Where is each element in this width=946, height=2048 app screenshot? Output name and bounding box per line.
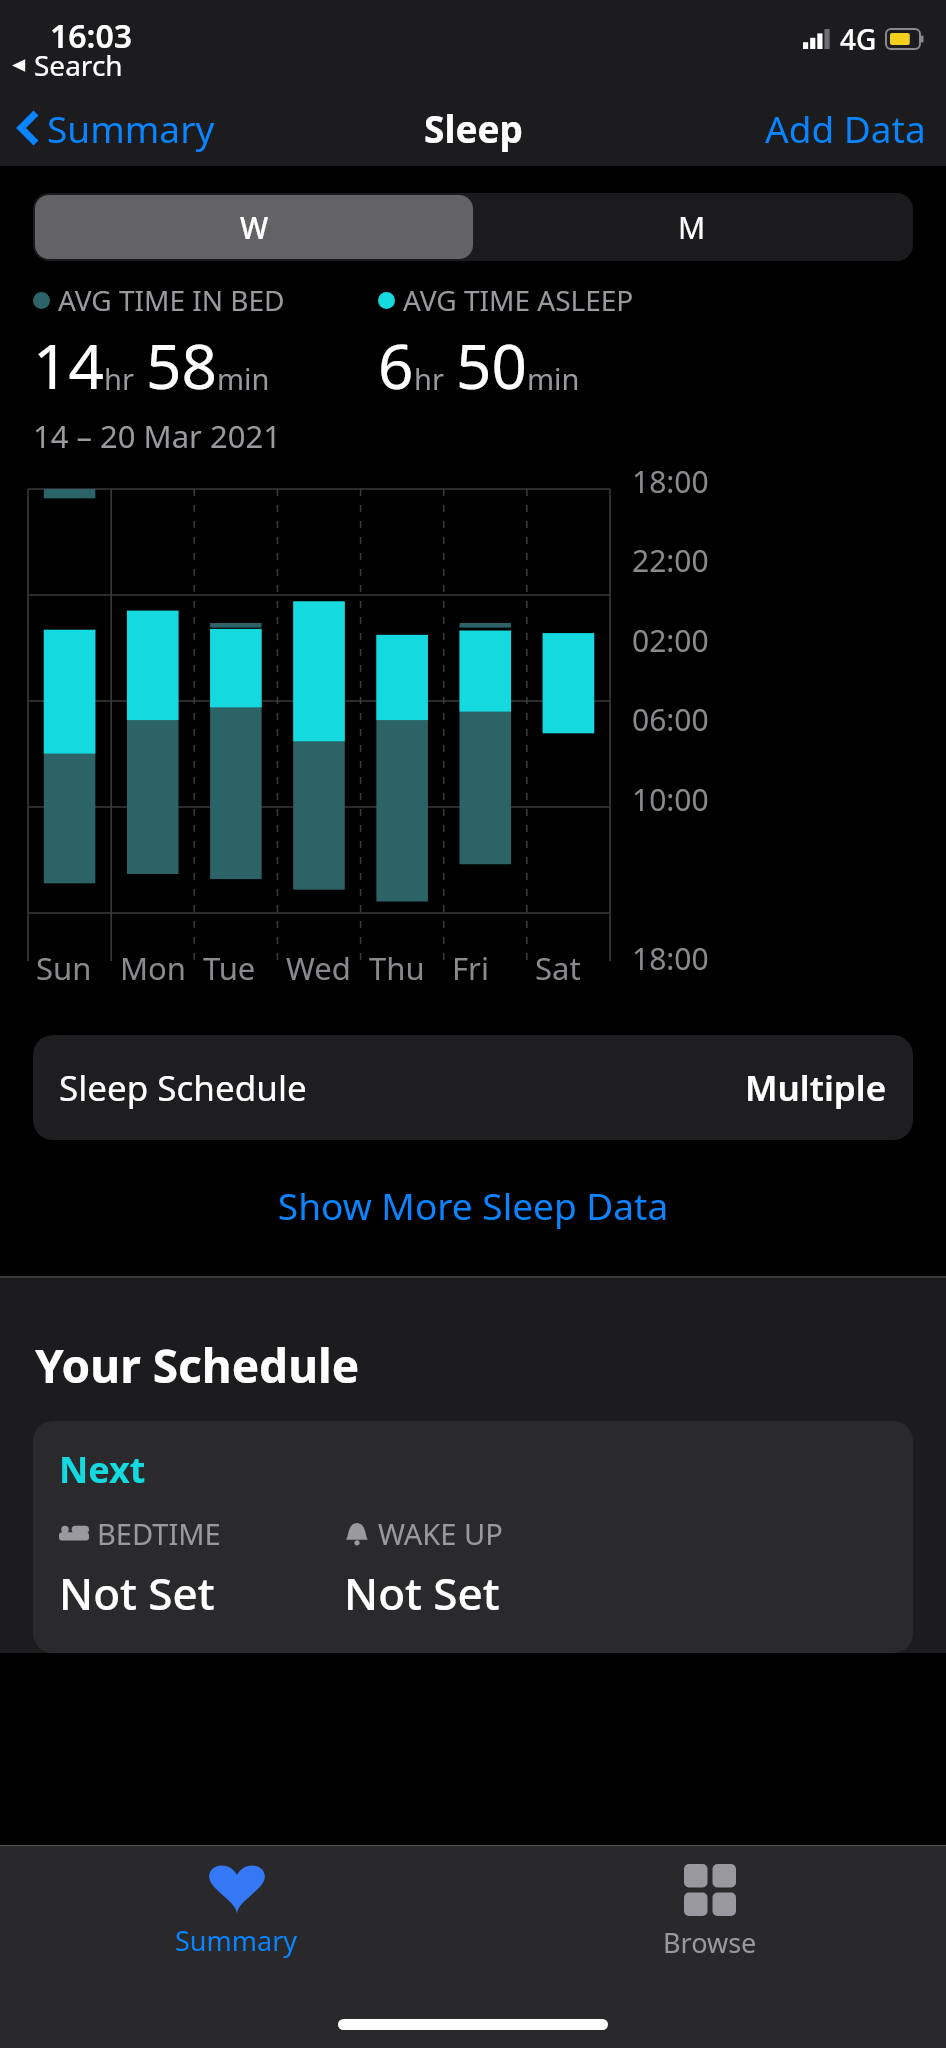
staticText: Tue	[203, 947, 256, 989]
button[interactable]: Next	[33, 1421, 913, 1653]
staticText: Fri	[452, 947, 489, 989]
staticText: hr	[414, 359, 444, 398]
button[interactable]: Summary	[10, 95, 223, 161]
button[interactable]: Add Data	[745, 93, 946, 163]
staticText: min	[527, 359, 580, 398]
staticText: 6	[378, 323, 414, 407]
button[interactable]: Sleep Schedule	[33, 1035, 913, 1140]
staticText: W	[240, 207, 269, 248]
staticText: AVG TIME ASLEEP	[403, 281, 634, 319]
staticText: Thu	[369, 947, 425, 989]
button[interactable]: Summary	[0, 1846, 473, 1976]
staticText: Not Set	[344, 1563, 500, 1623]
staticText: 14 – 20 Mar 2021	[33, 415, 281, 457]
staticText: Sat	[535, 947, 581, 989]
staticText: Summary	[175, 1922, 298, 1959]
staticText: BEDTIME	[97, 1514, 221, 1553]
staticText: 06:00	[632, 699, 709, 740]
staticText: Sleep Schedule	[59, 1064, 307, 1112]
button[interactable]: Browse	[473, 1846, 946, 1976]
staticText: Browse	[663, 1924, 757, 1961]
staticText: Mon	[120, 947, 187, 989]
staticText: 02:00	[632, 620, 709, 661]
staticText: Next	[59, 1445, 146, 1494]
staticText: Not Set	[59, 1563, 215, 1623]
staticText: Your Schedule	[35, 1334, 360, 1397]
staticText: 18:00	[632, 938, 709, 979]
staticText: 10:00	[632, 779, 709, 820]
staticText: WAKE UP	[378, 1514, 503, 1553]
staticText: min	[217, 359, 270, 398]
staticText: 58	[146, 323, 217, 407]
staticText: 16:03	[50, 14, 133, 58]
staticText: 14	[33, 323, 104, 407]
button[interactable]: Show More Sleep Data	[0, 1172, 946, 1238]
staticText: 50	[456, 323, 527, 407]
staticText: Search	[34, 46, 123, 84]
staticText: Multiple	[745, 1064, 887, 1112]
staticText: 18:00	[632, 461, 709, 502]
staticText: AVG TIME IN BED	[58, 281, 285, 319]
button[interactable]: M	[473, 195, 911, 259]
staticText: Sleep	[424, 103, 523, 153]
staticText: 4G	[840, 20, 877, 58]
staticText: 22:00	[632, 540, 709, 581]
staticText: Sun	[36, 947, 92, 989]
staticText: Summary	[47, 103, 215, 153]
staticText: M	[678, 207, 706, 248]
staticText: hr	[104, 359, 134, 398]
button[interactable]: W	[35, 195, 473, 259]
staticText: Wed	[286, 947, 351, 989]
